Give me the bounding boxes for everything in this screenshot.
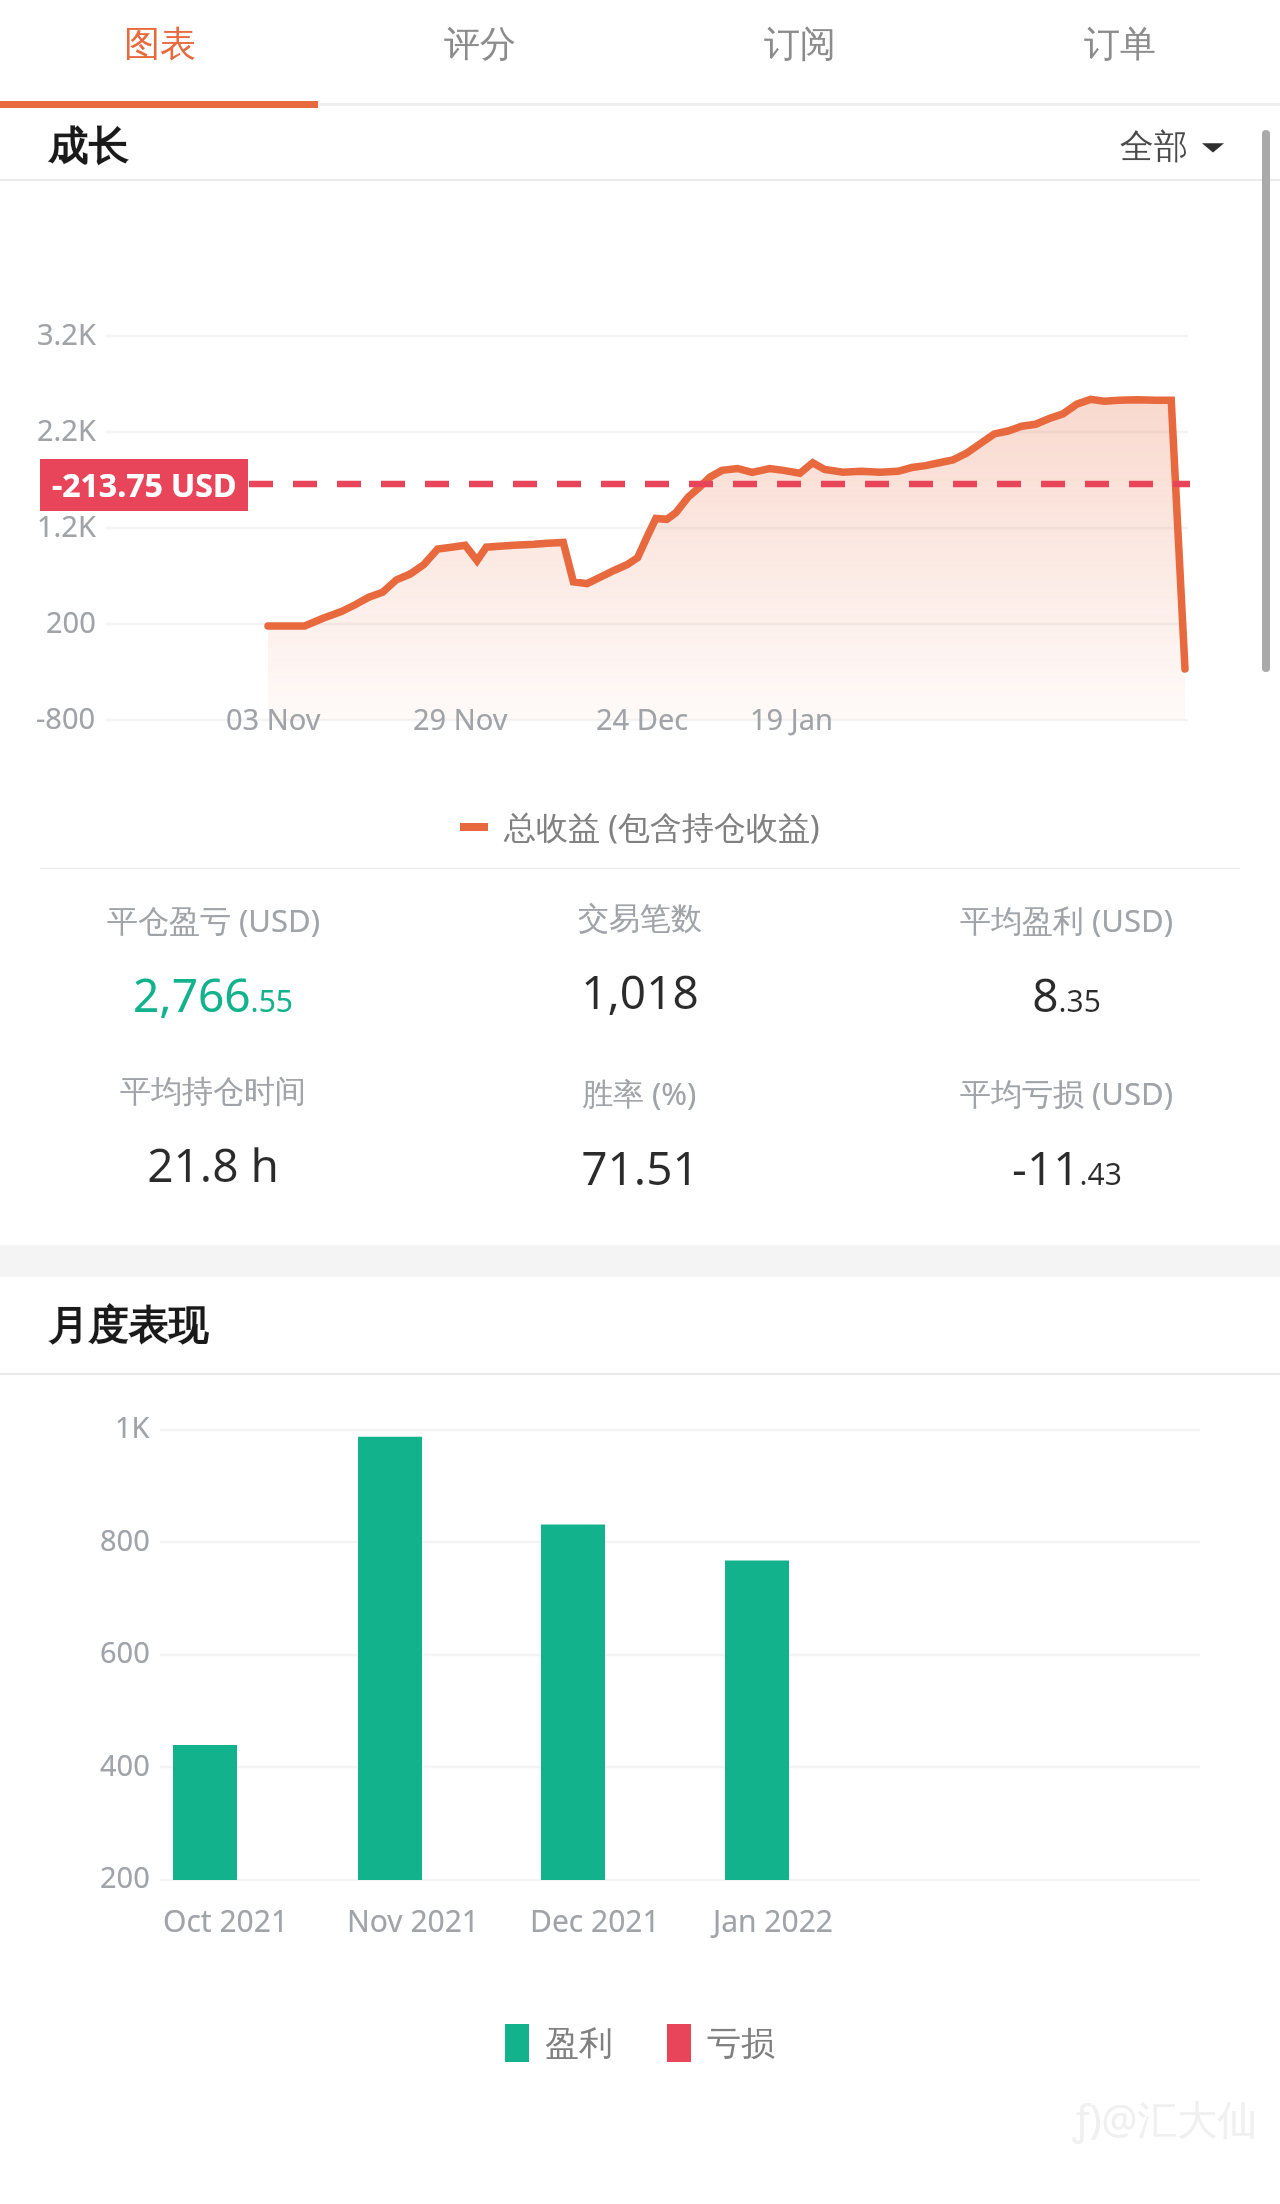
other: Select period bbox=[1202, 136, 1224, 158]
staticText: 600 bbox=[100, 1632, 150, 1671]
button[interactable]: 胜率 (%) bbox=[426, 1072, 853, 1199]
button[interactable]: 评分 bbox=[320, 0, 640, 113]
staticText: 8.35 bbox=[1032, 963, 1101, 1026]
staticText: 2,766.55 bbox=[133, 963, 293, 1026]
staticText: 订单 bbox=[1084, 21, 1156, 66]
staticText: 400 bbox=[100, 1745, 150, 1784]
staticText: 平均盈利 (USD) bbox=[960, 899, 1173, 941]
staticText: Oct 2021 bbox=[163, 1900, 289, 1941]
staticText: 19 Jan bbox=[750, 699, 833, 738]
staticText: 3.2K bbox=[37, 314, 96, 353]
staticText: 200 bbox=[100, 1857, 150, 1896]
button[interactable]: 交易笔数 bbox=[426, 899, 853, 1023]
button[interactable]: 订阅 bbox=[640, 0, 960, 113]
staticText: -213.75 USD bbox=[52, 463, 237, 507]
staticText: Nov 2021 bbox=[347, 1900, 480, 1941]
staticText: 800 bbox=[100, 1520, 150, 1559]
button[interactable]: 平均亏损 (USD) bbox=[853, 1072, 1280, 1199]
button[interactable]: 平均盈利 (USD) bbox=[853, 899, 1280, 1026]
staticText: 盈利 bbox=[545, 2022, 613, 2065]
staticText: 图表 bbox=[124, 21, 196, 66]
staticText: 亏损 bbox=[707, 2022, 775, 2065]
button[interactable]: 图表 bbox=[0, 0, 320, 113]
staticText: 21.8 h bbox=[147, 1133, 279, 1196]
staticText: 平仓盈亏 (USD) bbox=[107, 899, 320, 941]
staticText: 交易笔数 bbox=[578, 899, 702, 938]
staticText: 平均持仓时间 bbox=[120, 1072, 306, 1111]
button[interactable]: 订单 bbox=[960, 0, 1280, 113]
staticText: ƒ)@汇大仙 bbox=[1073, 2091, 1258, 2146]
button[interactable]: 平仓盈亏 (USD) bbox=[0, 899, 426, 1026]
staticText: 平均亏损 (USD) bbox=[960, 1072, 1173, 1114]
staticText: 1,018 bbox=[581, 960, 699, 1023]
staticText: 24 Dec bbox=[596, 699, 689, 738]
staticText: 03 Nov bbox=[226, 699, 321, 738]
staticText: 胜率 (%) bbox=[582, 1072, 697, 1114]
staticText: -800 bbox=[36, 698, 96, 737]
staticText: 1K bbox=[115, 1407, 150, 1446]
staticText: 订阅 bbox=[764, 21, 836, 66]
staticText: Jan 2022 bbox=[713, 1900, 833, 1941]
staticText: 成长 bbox=[48, 121, 128, 171]
staticText: Dec 2021 bbox=[530, 1900, 660, 1941]
staticText: 评分 bbox=[444, 21, 516, 66]
staticText: 71.51 bbox=[581, 1136, 699, 1199]
staticText: 全部 bbox=[1120, 125, 1188, 168]
button[interactable]: 平均持仓时间 bbox=[0, 1072, 426, 1196]
button[interactable]: 全部 bbox=[1112, 117, 1232, 176]
staticText: -11.43 bbox=[1012, 1136, 1122, 1199]
staticText: 总收益 (包含持仓收益) bbox=[504, 805, 820, 849]
staticText: 2.2K bbox=[37, 410, 96, 449]
staticText: 1.2K bbox=[37, 506, 96, 545]
staticText: 29 Nov bbox=[413, 699, 508, 738]
staticText: 200 bbox=[46, 602, 96, 641]
staticText: 月度表现 bbox=[48, 1300, 208, 1350]
